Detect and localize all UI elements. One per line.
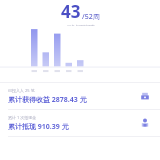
- staticText: 43: [61, 0, 81, 23]
- staticText: 累计获得收益 2878.43 元: [8, 95, 87, 105]
- button[interactable]: 已投入人 25 笔: [0, 83, 160, 109]
- staticText: 已参与理财周数: [67, 24, 95, 26]
- button[interactable]: 累计 1 次抵现金: [0, 110, 160, 136]
- staticText: 已投入人 25 笔: [8, 88, 35, 93]
- button[interactable]: 累计抵现: [138, 116, 152, 130]
- button[interactable]: 累计获得收益: [138, 89, 152, 103]
- staticText: 累计抵现 910.39 元: [8, 122, 69, 132]
- staticText: 累计 1 次抵现金: [8, 115, 37, 120]
- staticText: /52周: [82, 12, 100, 22]
